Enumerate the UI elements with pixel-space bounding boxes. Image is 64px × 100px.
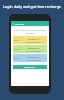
staticText: Day 2: [14, 48, 19, 51]
button[interactable]: Back: [11, 21, 49, 26]
button[interactable]: Day 3: [13, 54, 47, 62]
other: Back: [12, 23, 14, 25]
staticText: Claim Now: [24, 66, 36, 69]
button[interactable]: Day 2: [13, 45, 47, 53]
staticText: Free Recharge Code: [26, 41, 41, 43]
staticText: Day 3: [14, 57, 19, 60]
staticText: Login daily and get free recharge: [0, 4, 64, 9]
staticText: Daily Login: [15, 23, 24, 25]
staticText: Recharge 10: [28, 38, 40, 41]
staticText: Day 1: [14, 39, 19, 42]
staticText: Free Recharge Code: [26, 50, 41, 52]
staticText: Recharge 30: [28, 56, 40, 59]
button[interactable]: Day 1: [13, 36, 47, 44]
button[interactable]: Claim Now: [13, 65, 47, 69]
staticText: Recharge 20: [28, 47, 40, 50]
staticText: Login daily to get free recharge and ear…: [12, 29, 48, 38]
staticText: Free Recharge Code: [26, 59, 41, 61]
